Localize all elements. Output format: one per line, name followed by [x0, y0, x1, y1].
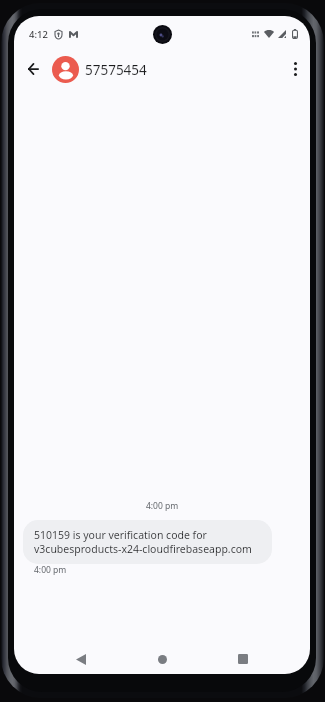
staticText: 57575454 [85, 61, 147, 79]
staticText: 510159 is your verification code for v3c… [34, 528, 252, 556]
button[interactable]: Back [67, 645, 95, 673]
staticText: 4:00 pm [34, 564, 67, 576]
staticText: 4:00 pm [14, 500, 310, 512]
button[interactable]: More options [282, 56, 308, 82]
staticText: 4:12 [29, 28, 48, 41]
button[interactable]: 510159 is your verification code for v3c… [23, 520, 272, 564]
button[interactable]: Back [20, 56, 46, 82]
button[interactable]: Recent apps [229, 645, 257, 673]
button[interactable]: Home [148, 645, 176, 673]
